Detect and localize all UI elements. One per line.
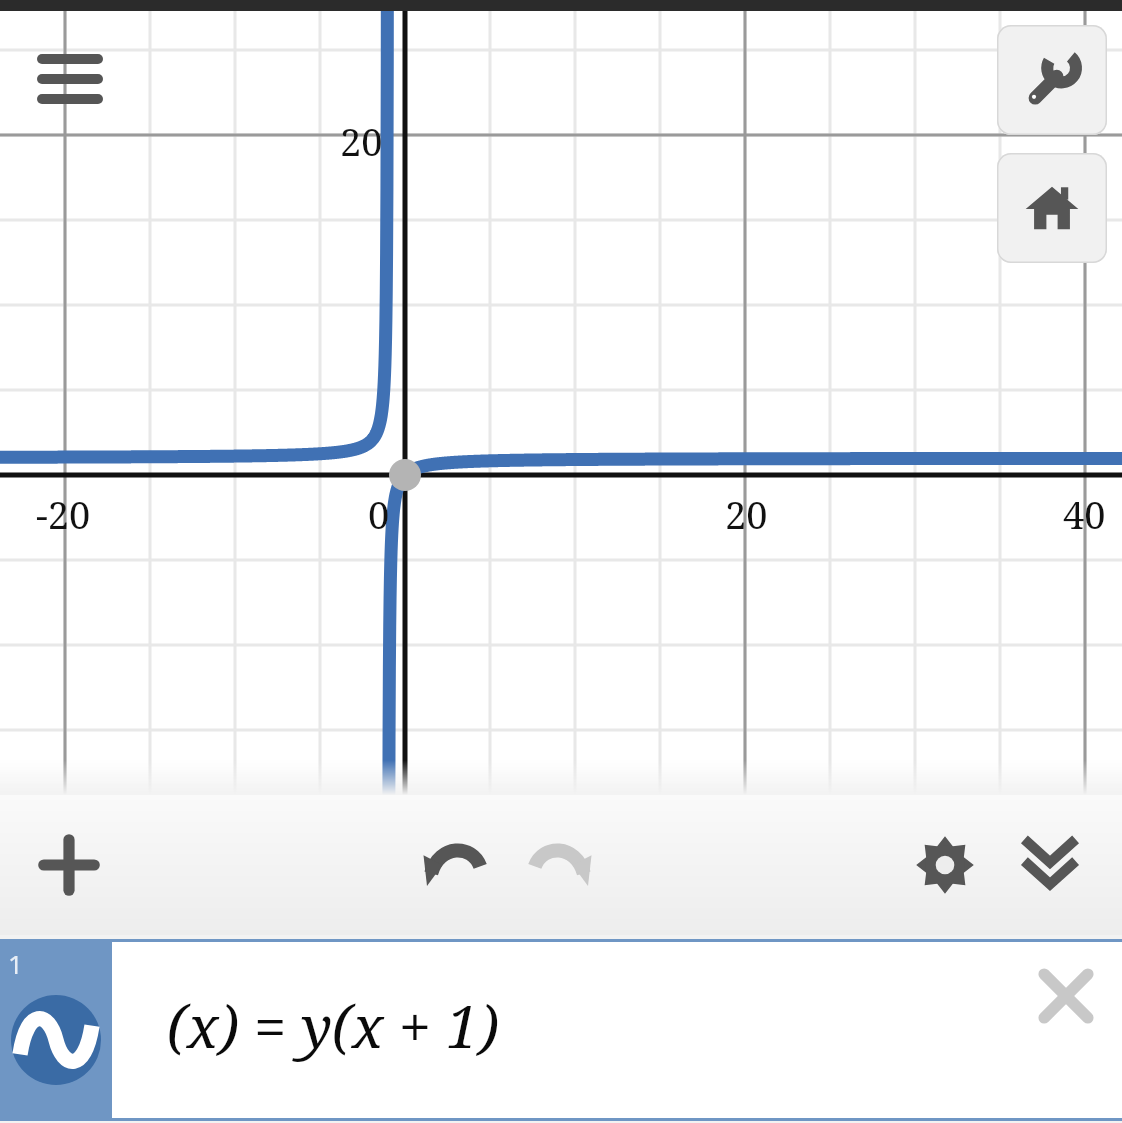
- staticText: 1: [8, 946, 23, 981]
- button[interactable]: Undo: [410, 820, 500, 910]
- button[interactable]: Toggle graph 1: [0, 942, 112, 1118]
- button[interactable]: Add expression: [24, 820, 114, 910]
- button[interactable]: Home: [997, 153, 1107, 263]
- staticText: 20: [725, 488, 768, 540]
- button[interactable]: Collapse keypad: [1005, 820, 1095, 910]
- staticText: 20: [340, 115, 383, 167]
- button[interactable]: Delete expression: [1030, 960, 1102, 1032]
- staticText: 40: [1063, 488, 1106, 540]
- button[interactable]: Menu: [30, 44, 110, 116]
- button[interactable]: Graph settings: [997, 25, 1107, 135]
- staticText: 0: [368, 488, 390, 540]
- staticText: -20: [36, 488, 91, 540]
- button[interactable]: (x) = y(x + 1): [112, 942, 1122, 1118]
- button[interactable]: Redo: [515, 820, 605, 910]
- button[interactable]: Settings: [900, 820, 990, 910]
- staticText: (x) = y(x + 1): [167, 986, 499, 1065]
